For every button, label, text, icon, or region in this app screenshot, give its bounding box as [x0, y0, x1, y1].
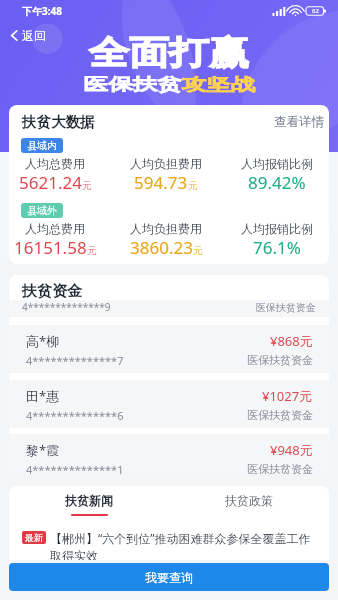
- staticText: 人均报销比例: [241, 156, 313, 171]
- staticText: 攻坚战: [182, 74, 255, 94]
- staticText: 元: [82, 179, 92, 192]
- button[interactable]: 我要查询: [9, 563, 329, 591]
- button[interactable]: 黎*霞: [9, 434, 329, 474]
- staticText: 3860.23: [130, 236, 193, 259]
- staticText: 62: [312, 7, 319, 15]
- button[interactable]: 田*惠: [9, 380, 329, 428]
- staticText: 594.73: [134, 171, 188, 194]
- staticText: 扶贫大数据: [22, 113, 95, 131]
- staticText: 高*柳: [26, 332, 60, 350]
- staticText: ¥868元: [270, 332, 313, 350]
- button[interactable]: 查看详情: [274, 114, 324, 130]
- staticText: 人均负担费用: [130, 221, 202, 236]
- staticText: 人均总费用: [25, 221, 85, 236]
- staticText: 扶贫政策: [225, 493, 273, 508]
- staticText: 我要查询: [145, 570, 193, 585]
- staticText: 元: [193, 244, 203, 257]
- staticText: 县域外: [27, 204, 57, 217]
- button[interactable]: 返回: [10, 26, 46, 44]
- staticText: 医保扶贫资金: [256, 301, 316, 314]
- staticText: 【郴州】“六个到位”推动困难群众参保全覆盖工作取得实效: [50, 530, 319, 564]
- staticText: 4**************1: [26, 462, 124, 474]
- staticText: 元: [87, 244, 97, 257]
- staticText: 4**************7: [26, 353, 124, 368]
- staticText: 黎*霞: [26, 441, 60, 459]
- staticText: 返回: [22, 28, 46, 43]
- staticText: 田*惠: [26, 387, 60, 405]
- staticText: 医保扶贫: [84, 74, 182, 94]
- staticText: 最新: [25, 532, 43, 543]
- staticText: 4**************9: [22, 300, 111, 314]
- staticText: 人均总费用: [25, 156, 85, 171]
- staticText: 4**************6: [26, 408, 124, 423]
- staticText: 5621.24: [19, 171, 82, 194]
- staticText: 扶贫资金: [22, 282, 82, 301]
- button[interactable]: 最新: [22, 530, 319, 564]
- staticText: 下午3:48: [22, 4, 62, 18]
- button[interactable]: 高*柳: [9, 325, 329, 373]
- staticText: ¥948元: [270, 441, 313, 459]
- staticText: 医保扶贫资金: [247, 353, 313, 367]
- button[interactable]: 扶贫政策: [169, 493, 329, 514]
- staticText: 人均负担费用: [130, 156, 202, 171]
- staticText: ¥1027元: [262, 387, 313, 405]
- staticText: 医保扶贫资金: [247, 408, 313, 422]
- staticText: 元: [188, 179, 198, 192]
- staticText: 全面打赢: [89, 32, 249, 73]
- staticText: 县域内: [27, 139, 57, 152]
- button[interactable]: 扶贫新闻: [9, 493, 169, 516]
- staticText: 76.1%: [253, 236, 301, 259]
- staticText: 人均报销比例: [241, 221, 313, 236]
- staticText: 扶贫新闻: [65, 493, 113, 508]
- staticText: 医保扶贫资金: [247, 462, 313, 474]
- staticText: 16151.58: [14, 236, 87, 259]
- staticText: 89.42%: [248, 171, 306, 194]
